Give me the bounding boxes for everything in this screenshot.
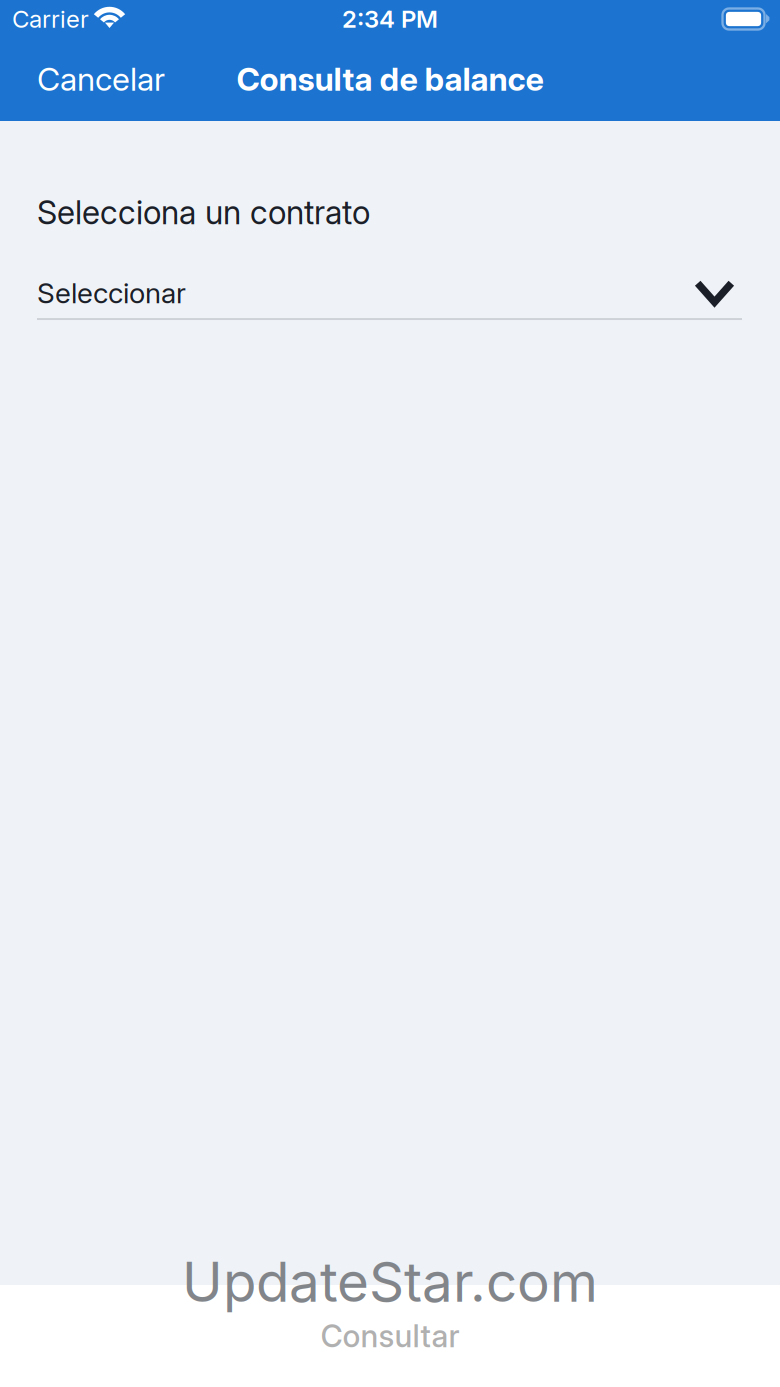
button[interactable]: Consultar (0, 1285, 780, 1387)
button[interactable]: Cancelar (21, 48, 181, 110)
staticText: Consultar (320, 1317, 459, 1354)
staticText: Seleccionar (37, 276, 186, 310)
button[interactable]: Seleccionar (37, 268, 742, 320)
staticText: 2:34 PM (342, 4, 438, 33)
staticText: Selecciona un contrato (37, 193, 370, 232)
staticText: Carrier (12, 4, 89, 33)
staticText: UpdateStar.com (182, 1249, 598, 1315)
staticText: Cancelar (37, 60, 165, 98)
staticText: Consulta de balance (236, 60, 543, 98)
